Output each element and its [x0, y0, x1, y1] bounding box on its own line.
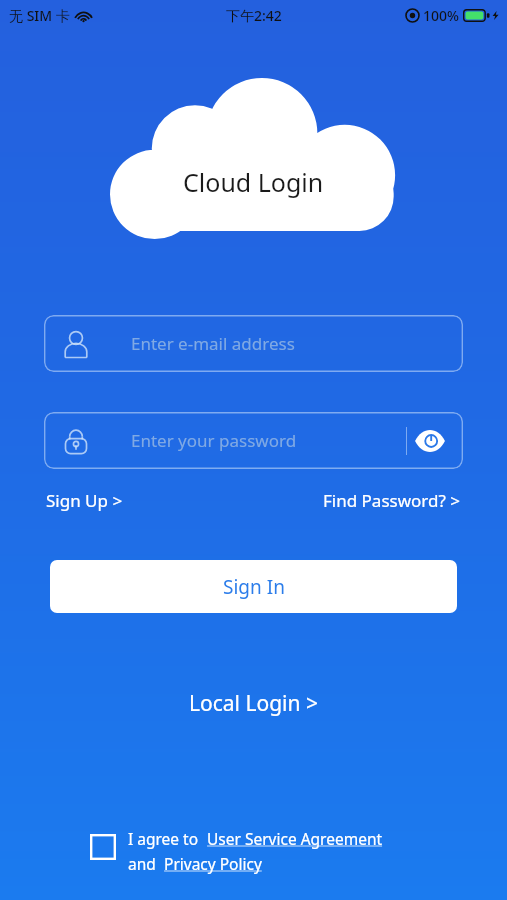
staticText: I agree to [128, 828, 207, 849]
staticText: Find Password? > [323, 489, 461, 512]
button[interactable]: Enter e-mail address [44, 315, 463, 372]
staticText: Sign In [223, 574, 285, 600]
button[interactable]: Find Password? > [321, 485, 463, 516]
staticText: Cloud Login [183, 165, 324, 199]
staticText: and [128, 853, 164, 874]
button[interactable]: Sign In [50, 560, 457, 613]
button[interactable]: User Service Agreement [207, 828, 383, 849]
button[interactable]: Agree to terms [90, 834, 116, 860]
button[interactable]: Sign Up > [44, 485, 125, 516]
staticText: 下午2:42 [226, 6, 282, 25]
staticText: Sign Up > [46, 489, 123, 512]
button[interactable]: Show password [407, 418, 453, 464]
staticText: Enter e-mail address [131, 332, 295, 355]
staticText: Local Login > [189, 689, 318, 718]
staticText: 100% [423, 6, 459, 25]
staticText: User Service Agreement [207, 828, 383, 849]
staticText: Enter your password [131, 429, 297, 452]
staticText: Privacy Policy [164, 853, 262, 874]
staticText: 无 SIM 卡 [9, 6, 70, 25]
button[interactable]: Privacy Policy [164, 853, 262, 874]
button[interactable]: Enter your password [44, 412, 463, 469]
button[interactable]: Local Login > [179, 683, 328, 724]
